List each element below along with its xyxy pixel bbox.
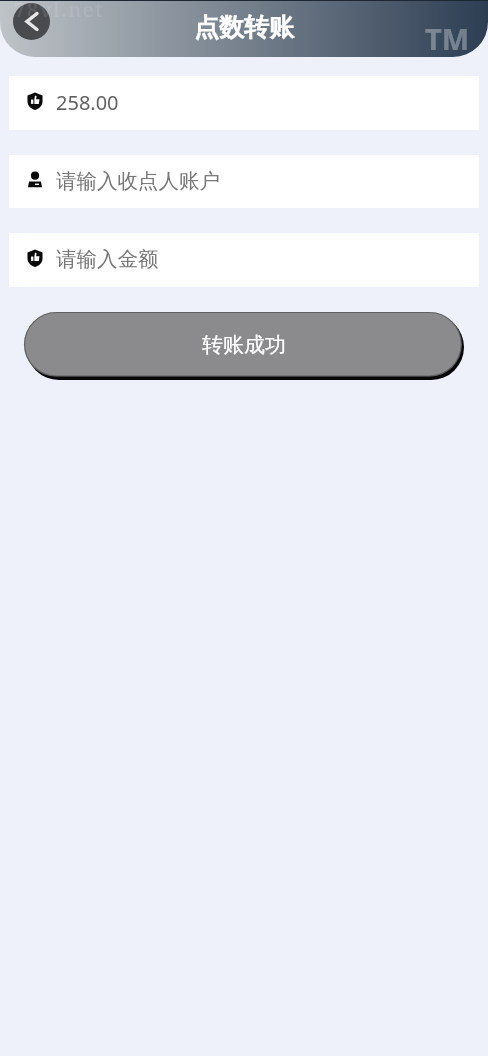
staticText: 78vl.net	[14, 0, 105, 23]
staticText: 点数转账	[194, 12, 294, 43]
staticText: 请输入收点人账户	[56, 168, 220, 194]
button[interactable]: 请输入收点人账户	[9, 155, 479, 208]
staticText: 转账成功	[202, 332, 286, 358]
staticText: 258.00	[56, 89, 119, 116]
button[interactable]: 258.00	[9, 76, 479, 130]
staticText: TM	[425, 19, 470, 57]
button[interactable]: 转账成功	[24, 312, 464, 380]
button[interactable]: Back	[13, 3, 50, 40]
button[interactable]: 请输入金额	[9, 233, 479, 287]
staticText: 请输入金额	[56, 246, 159, 272]
